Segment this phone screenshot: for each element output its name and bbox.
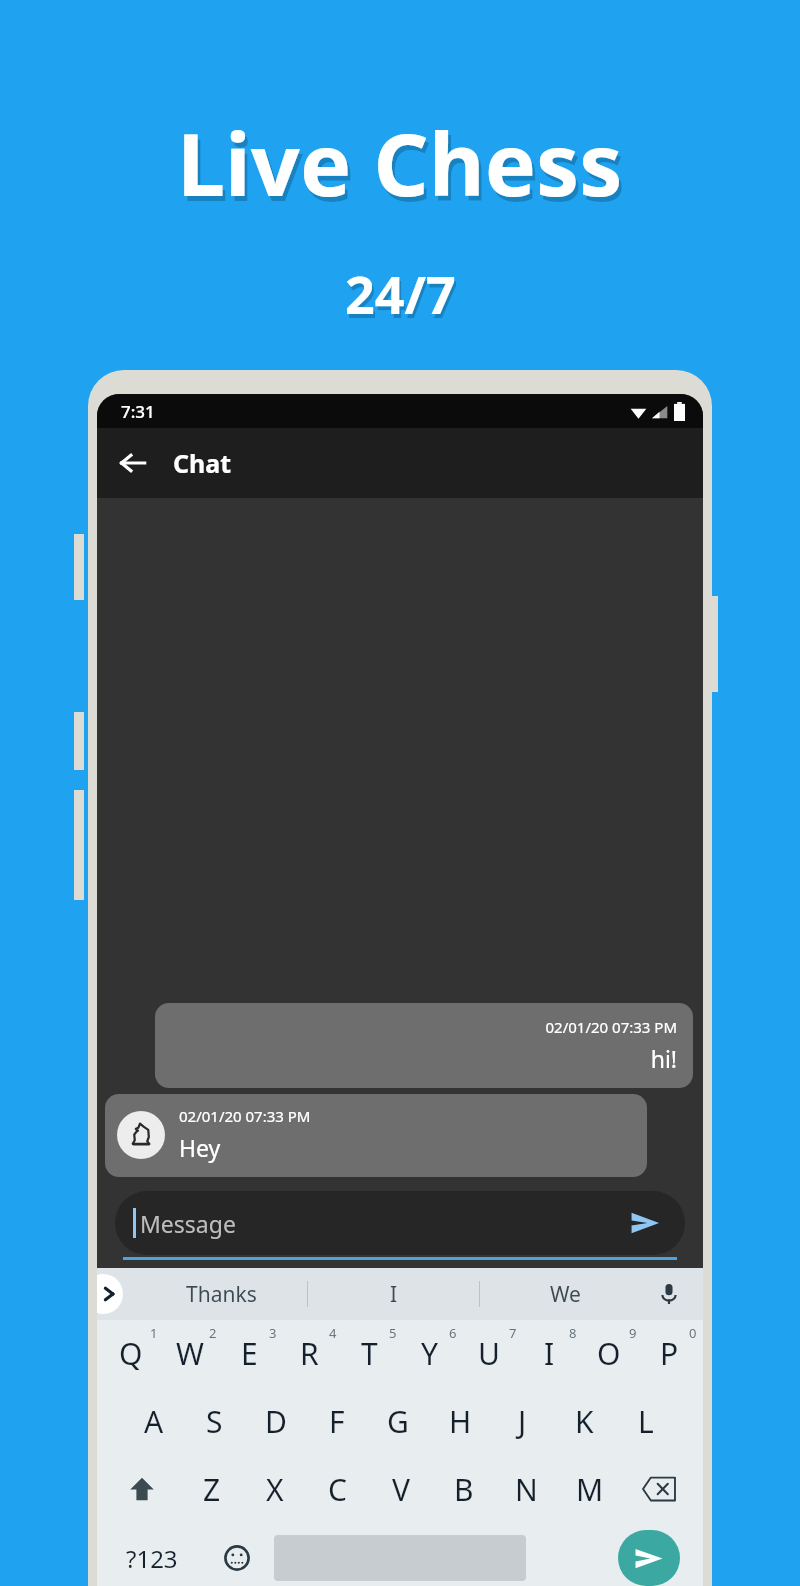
button[interactable]: Backspace bbox=[621, 1466, 697, 1512]
staticText: L bbox=[638, 1401, 654, 1442]
button[interactable]: F bbox=[306, 1398, 367, 1444]
button[interactable]: Back bbox=[109, 439, 157, 487]
staticText: 7 bbox=[509, 1324, 517, 1342]
staticText: R bbox=[300, 1333, 319, 1374]
button[interactable]: Shift bbox=[103, 1466, 180, 1512]
staticText: Thanks bbox=[186, 1280, 257, 1309]
staticText: I bbox=[390, 1280, 398, 1309]
staticText: Y bbox=[421, 1333, 438, 1374]
button[interactable]: Thanks bbox=[135, 1268, 307, 1320]
button[interactable]: Voice input bbox=[651, 1276, 687, 1312]
staticText: G bbox=[387, 1401, 409, 1442]
staticText: E bbox=[241, 1333, 258, 1374]
button[interactable]: Q bbox=[101, 1330, 160, 1376]
staticText: P bbox=[660, 1333, 679, 1374]
staticText: 0 bbox=[689, 1324, 697, 1342]
staticText: ?123 bbox=[126, 1542, 178, 1575]
staticText: Live Chess bbox=[177, 104, 623, 221]
staticText: W bbox=[176, 1333, 204, 1374]
button[interactable]: I bbox=[519, 1330, 579, 1376]
button[interactable]: 02/01/20 07:33 PM bbox=[105, 1094, 647, 1177]
button[interactable]: S bbox=[184, 1398, 245, 1444]
button[interactable]: Send message bbox=[618, 1530, 680, 1586]
staticText: 24/7 bbox=[347, 262, 458, 333]
staticText: F bbox=[329, 1401, 345, 1442]
button[interactable]: E bbox=[219, 1330, 279, 1376]
staticText: T bbox=[361, 1333, 378, 1374]
staticText: S bbox=[206, 1401, 223, 1442]
button[interactable]: W bbox=[160, 1330, 219, 1376]
button[interactable]: G bbox=[367, 1398, 429, 1444]
staticText: K bbox=[575, 1401, 594, 1442]
staticText: Message bbox=[140, 1208, 625, 1239]
button[interactable]: We bbox=[480, 1268, 651, 1320]
staticText: 02/01/20 07:33 PM bbox=[545, 1017, 677, 1037]
staticText: V bbox=[392, 1469, 410, 1510]
button[interactable]: T bbox=[339, 1330, 399, 1376]
button[interactable]: K bbox=[553, 1398, 615, 1444]
staticText: 9 bbox=[629, 1324, 637, 1342]
staticText: Live Chess bbox=[180, 109, 626, 226]
staticText: C bbox=[328, 1469, 347, 1510]
staticText: hi! bbox=[650, 1043, 677, 1074]
button[interactable]: Send bbox=[625, 1203, 665, 1243]
button[interactable]: R bbox=[279, 1330, 339, 1376]
staticText: Hey bbox=[179, 1132, 221, 1163]
staticText: 6 bbox=[449, 1324, 457, 1342]
staticText: A bbox=[144, 1401, 164, 1442]
staticText: 02/01/20 07:33 PM bbox=[179, 1106, 311, 1126]
staticText: I bbox=[544, 1333, 555, 1374]
staticText: 4 bbox=[329, 1324, 337, 1342]
staticText: X bbox=[266, 1469, 284, 1510]
staticText: 7:31 bbox=[121, 400, 155, 423]
button[interactable]: O bbox=[579, 1330, 639, 1376]
button[interactable]: Message bbox=[115, 1191, 685, 1255]
staticText: U bbox=[478, 1333, 500, 1374]
button[interactable]: J bbox=[491, 1398, 553, 1444]
button[interactable]: D bbox=[245, 1398, 306, 1444]
button[interactable]: L bbox=[615, 1398, 677, 1444]
staticText: B bbox=[454, 1469, 474, 1510]
button[interactable]: X bbox=[243, 1466, 306, 1512]
staticText: Z bbox=[203, 1469, 221, 1510]
staticText: 24/7 bbox=[345, 258, 456, 329]
button[interactable]: P bbox=[639, 1330, 699, 1376]
button[interactable]: ?123 bbox=[103, 1530, 200, 1586]
button[interactable]: Expand suggestions bbox=[97, 1274, 123, 1314]
button[interactable]: M bbox=[558, 1466, 621, 1512]
staticText: We bbox=[550, 1280, 581, 1309]
staticText: N bbox=[515, 1469, 538, 1510]
button[interactable]: 02/01/20 07:33 PM bbox=[155, 1003, 693, 1088]
button[interactable]: I bbox=[308, 1268, 479, 1320]
button[interactable]: V bbox=[369, 1466, 432, 1512]
button[interactable]: U bbox=[459, 1330, 519, 1376]
button[interactable]: A bbox=[123, 1398, 184, 1444]
staticText: 2 bbox=[209, 1324, 217, 1342]
staticText: M bbox=[576, 1469, 604, 1510]
staticText: H bbox=[449, 1401, 472, 1442]
staticText: 1 bbox=[150, 1324, 158, 1342]
button[interactable]: Z bbox=[180, 1466, 243, 1512]
button[interactable]: H bbox=[429, 1398, 491, 1444]
staticText: 3 bbox=[269, 1324, 277, 1342]
staticText: Q bbox=[119, 1333, 143, 1374]
staticText: 5 bbox=[389, 1324, 397, 1342]
button[interactable]: N bbox=[495, 1466, 558, 1512]
button[interactable]: C bbox=[306, 1466, 369, 1512]
button[interactable]: Y bbox=[399, 1330, 459, 1376]
staticText: D bbox=[265, 1401, 287, 1442]
button[interactable]: B bbox=[432, 1466, 495, 1512]
staticText: J bbox=[518, 1401, 527, 1442]
button[interactable]: Emoji bbox=[200, 1530, 274, 1586]
staticText: Chat bbox=[173, 446, 232, 480]
staticText: 8 bbox=[569, 1324, 577, 1342]
staticText: O bbox=[597, 1333, 621, 1374]
